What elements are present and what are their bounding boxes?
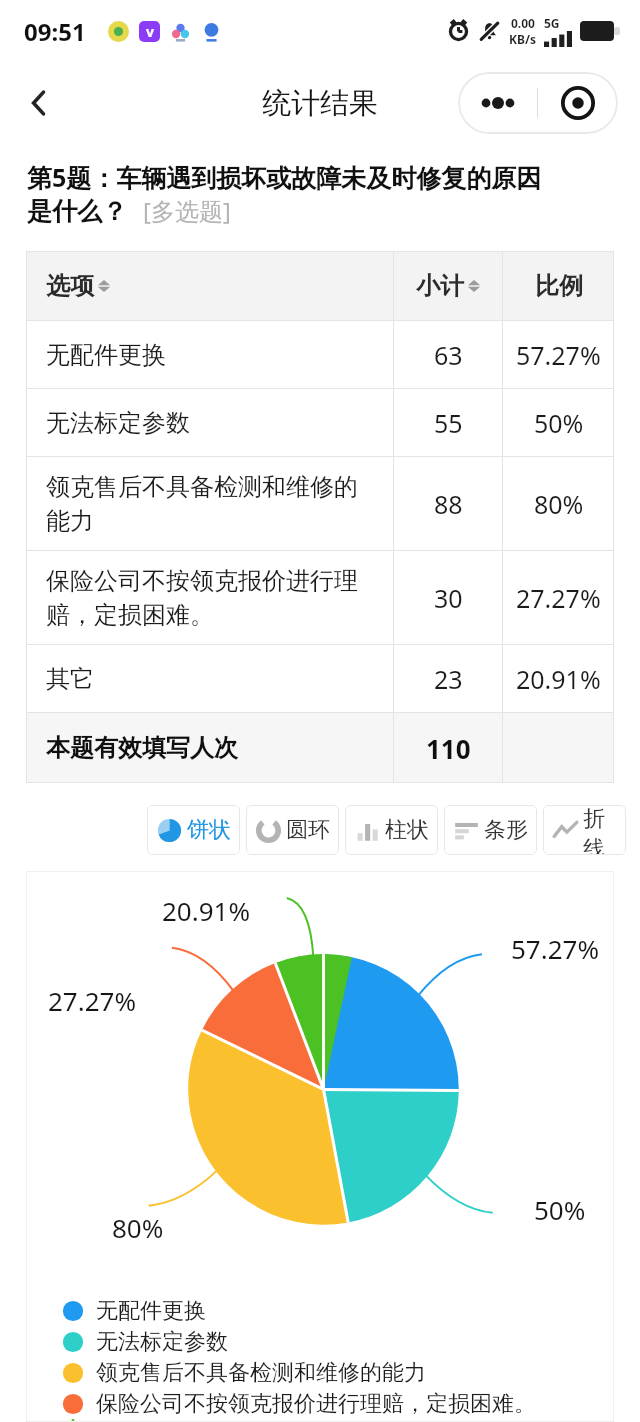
staticText: 20.91% [516, 662, 601, 696]
staticText: 57.27% [516, 338, 601, 372]
button[interactable]: 领克售后不具备检测和维修的 能力 [26, 457, 614, 551]
button[interactable]: 其它 [62, 1419, 140, 1422]
staticText: 饼状 [187, 816, 231, 844]
staticText: 5G [544, 15, 560, 31]
staticText: 无法标定参数 [46, 408, 190, 438]
button[interactable]: 柱状 [345, 805, 438, 855]
staticText: 其它 [96, 1419, 140, 1422]
staticText: 保险公司不按领克报价进行理赔，定损困难。 [96, 1390, 536, 1418]
staticText: 80% [534, 487, 584, 521]
staticText: 无配件更换 [96, 1297, 206, 1325]
staticText: 09:51 [24, 15, 86, 48]
staticText: 统计结果 [262, 85, 378, 122]
button[interactable]: 饼状 [147, 805, 240, 855]
staticText: 无配件更换 [46, 340, 166, 370]
staticText: KB/s [509, 31, 536, 47]
staticText: 20.91% [162, 893, 251, 928]
button[interactable]: Back [10, 74, 68, 132]
button[interactable]: 无配件更换 [62, 1295, 206, 1326]
staticText: 是什么？ [27, 196, 127, 227]
staticText: 保险公司不按领克报价进行理 赔，定损困难。 [46, 566, 358, 631]
staticText: 无法标定参数 [96, 1328, 228, 1356]
button[interactable]: 条形 [444, 805, 537, 855]
staticText: 圆环 [286, 816, 330, 844]
button[interactable]: 保险公司不按领克报价进行理 赔，定损困难。 [26, 551, 614, 645]
staticText: 27.27% [516, 581, 601, 615]
staticText: 80% [112, 1210, 164, 1245]
button[interactable]: More options [458, 72, 537, 134]
button[interactable]: 领克售后不具备检测和维修的能力 [62, 1357, 426, 1388]
staticText: 50% [534, 406, 584, 440]
staticText: 选项 [46, 271, 94, 301]
button[interactable]: 保险公司不按领克报价进行理赔，定损困难。 [62, 1388, 536, 1419]
button[interactable]: 无配件更换 [26, 321, 614, 389]
staticText: 55 [434, 406, 463, 440]
staticText: 折线 [583, 805, 617, 855]
staticText: 23 [434, 662, 463, 696]
button[interactable]: 圆环 [246, 805, 339, 855]
staticText: v [146, 22, 154, 41]
staticText: 63 [434, 338, 463, 372]
staticText: 领克售后不具备检测和维修的能力 [96, 1359, 426, 1387]
staticText: 小计 [416, 271, 464, 301]
staticText: 88 [434, 487, 463, 521]
staticText: 30 [434, 581, 463, 615]
staticText: 条形 [484, 816, 528, 844]
button[interactable]: 无法标定参数 [26, 389, 614, 457]
staticText: 领克售后不具备检测和维修的 能力 [46, 472, 358, 537]
button[interactable]: 折线 [543, 805, 626, 855]
staticText: 110 [426, 731, 471, 766]
staticText: 比例 [535, 271, 583, 301]
staticText: 57.27% [511, 931, 600, 966]
button[interactable]: 选项 [26, 251, 614, 321]
staticText: 0.00 [511, 15, 535, 31]
staticText: 27.27% [48, 983, 137, 1018]
button[interactable]: Close mini program [538, 72, 618, 134]
button[interactable]: 无法标定参数 [62, 1326, 228, 1357]
button[interactable]: 本题有效填写人次 [26, 713, 614, 783]
staticText: 第5题：车辆遇到损坏或故障未及时修复的原因 [27, 160, 542, 194]
staticText: 柱状 [385, 816, 429, 844]
button[interactable]: 其它 [26, 645, 614, 713]
staticText: [多选题] [143, 194, 231, 227]
staticText: 其它 [46, 664, 94, 694]
staticText: 50% [534, 1192, 586, 1227]
staticText: 本题有效填写人次 [46, 733, 238, 763]
